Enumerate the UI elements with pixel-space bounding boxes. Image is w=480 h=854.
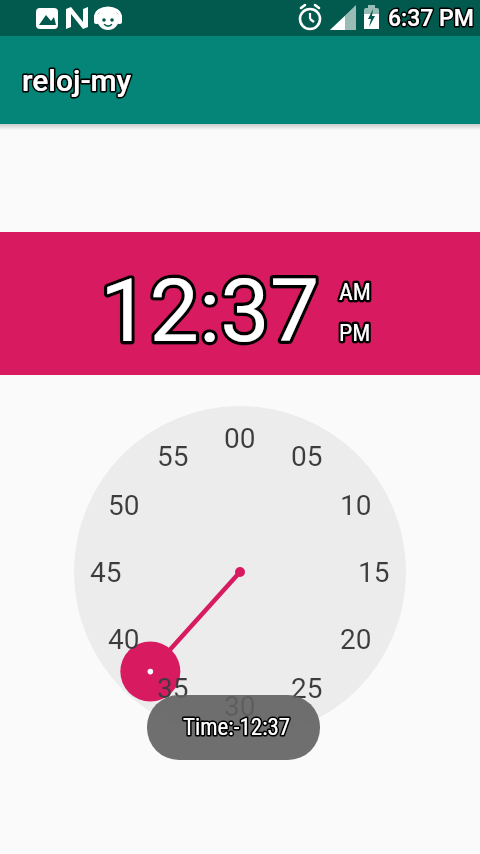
staticText: AM [339, 278, 371, 306]
staticText: 55 [157, 440, 189, 473]
button[interactable]: PM [339, 319, 371, 347]
staticText: reloj-my [22, 63, 132, 98]
staticText: 12:37 [100, 259, 320, 362]
staticText: 35 [157, 672, 189, 705]
staticText: 40 [108, 623, 140, 656]
button[interactable]: AM [339, 278, 371, 306]
staticText: 30 [224, 690, 256, 723]
staticText: Time:-12:37 [183, 714, 291, 741]
staticText: 25 [291, 672, 323, 705]
staticText: 6:37 PM [388, 5, 474, 32]
staticText: 15 [358, 556, 390, 589]
staticText: 50 [108, 489, 140, 522]
staticText: 20 [340, 623, 372, 656]
staticText: 6:37 PM [388, 5, 474, 32]
staticText: PM [339, 319, 371, 347]
staticText: 12:37 [100, 259, 320, 362]
staticText: PM [339, 319, 371, 347]
staticText: Time:-12:37 [183, 714, 291, 741]
button[interactable]: 12:37 [100, 259, 320, 362]
button[interactable] [74, 406, 406, 738]
staticText: 05 [291, 440, 323, 473]
staticText: reloj-my [22, 63, 132, 98]
staticText: 45 [90, 556, 122, 589]
staticText: 00 [224, 422, 256, 455]
staticText: AM [339, 278, 371, 306]
staticText: 10 [340, 489, 372, 522]
